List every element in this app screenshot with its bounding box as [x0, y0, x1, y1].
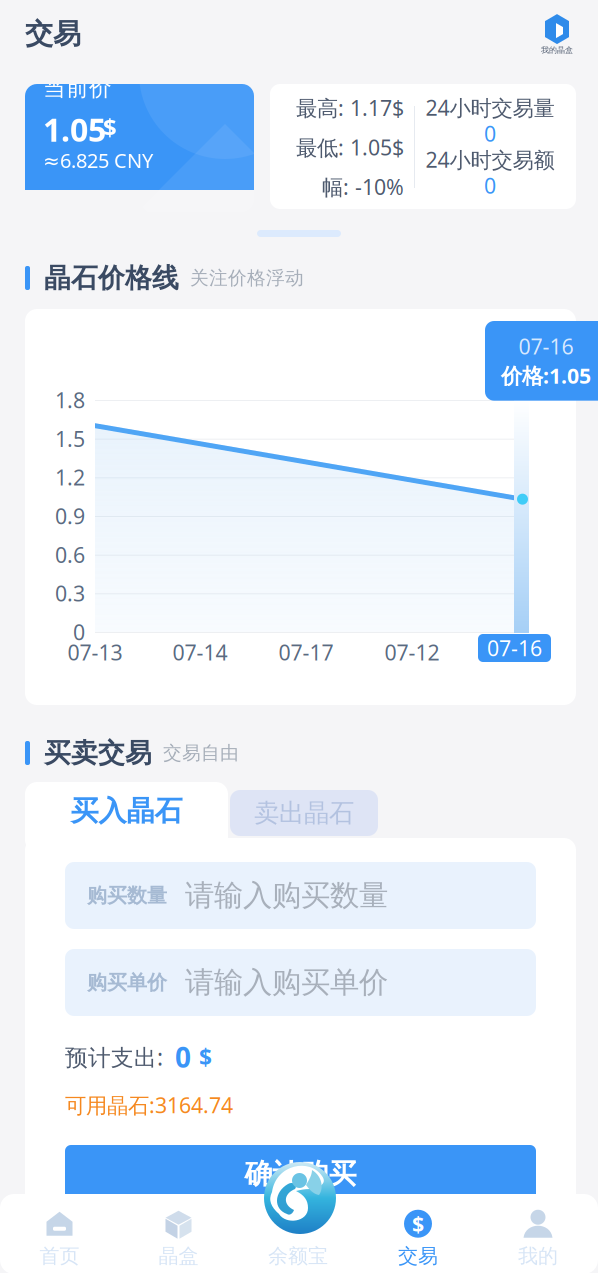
button[interactable]: 07-16: [478, 634, 551, 662]
staticText: 买卖交易: [44, 737, 152, 769]
staticText: 07-13: [67, 638, 122, 666]
staticText: 24小时交易量: [425, 93, 554, 122]
button[interactable]: 确认购买: [65, 1145, 536, 1203]
staticText: $: [103, 111, 117, 143]
staticText: 请输入购买数量: [185, 877, 388, 913]
staticText: 我的晶盒: [541, 45, 573, 55]
staticText: 1.5: [55, 424, 85, 453]
staticText: 0.9: [55, 502, 85, 530]
staticText: 购买单价: [87, 970, 167, 995]
staticText: 确认购买: [244, 1157, 356, 1191]
staticText: 0: [484, 119, 496, 148]
staticText: 晶盒: [158, 1244, 198, 1268]
button[interactable]: 首页: [0, 1206, 119, 1272]
staticText: 0: [484, 171, 496, 200]
staticText: 1.8: [55, 386, 85, 414]
staticText: 24小时交易额: [425, 145, 554, 174]
staticText: 最高: 1.17$: [296, 94, 404, 122]
staticText: 0: [73, 618, 85, 646]
staticText: 07-14: [172, 638, 227, 666]
staticText: 07-17: [278, 638, 333, 666]
staticText: 1.05: [43, 108, 106, 150]
staticText: 交易: [398, 1244, 438, 1268]
staticText: 关注价格浮动: [190, 266, 304, 289]
button[interactable]: 07-16: [485, 321, 598, 401]
button[interactable]: 我的晶盒: [541, 13, 573, 55]
button[interactable]: 购买数量: [65, 862, 536, 929]
staticText: 购买数量: [87, 883, 167, 908]
staticText: 交易自由: [163, 741, 239, 764]
staticText: 买入晶石: [70, 794, 182, 828]
staticText: 我的: [518, 1244, 558, 1268]
staticText: 交易: [25, 17, 81, 51]
staticText: 可用晶石:3164.74: [65, 1091, 233, 1119]
staticText: 1.2: [55, 463, 85, 491]
staticText: 卖出晶石: [254, 797, 354, 828]
staticText: 价格:1.05: [501, 361, 591, 390]
staticText: 预计支出:: [65, 1042, 163, 1072]
staticText: 晶石价格线: [44, 262, 179, 294]
staticText: $: [199, 1042, 212, 1072]
staticText: 当前价: [43, 74, 112, 102]
button[interactable]: 买入晶石: [25, 782, 228, 840]
staticText: 余额宝: [268, 1244, 328, 1268]
button[interactable]: 晶盒: [119, 1206, 238, 1272]
staticText: $: [412, 1210, 424, 1238]
button[interactable]: 卖出晶石: [230, 790, 378, 836]
staticText: 0.6: [55, 540, 85, 569]
staticText: 07-12: [384, 638, 439, 666]
staticText: 幅: -10%: [322, 173, 404, 201]
staticText: 最低: 1.05$: [296, 133, 404, 161]
staticText: 首页: [39, 1244, 79, 1268]
staticText: 请输入购买单价: [185, 964, 388, 1000]
button[interactable]: 购买单价: [65, 949, 536, 1016]
staticText: 0.3: [55, 579, 85, 607]
staticText: 0: [175, 1038, 191, 1076]
button[interactable]: 余额宝: [238, 1206, 358, 1272]
button[interactable]: 余额宝: [264, 1162, 336, 1234]
button[interactable]: 我的: [478, 1206, 598, 1272]
staticText: 07-16: [518, 332, 573, 360]
button[interactable]: $: [358, 1206, 478, 1272]
staticText: ≈6.825 CNY: [43, 147, 153, 174]
staticText: 07-16: [487, 634, 542, 662]
